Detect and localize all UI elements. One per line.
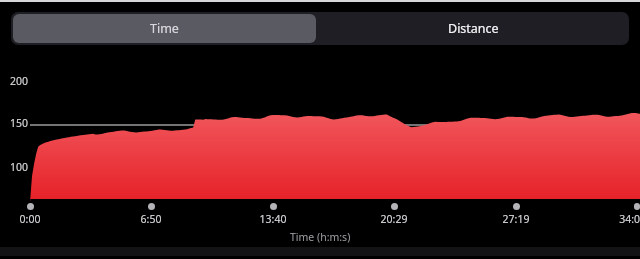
staticText: Time — [150, 20, 179, 37]
staticText: 34:0 — [611, 212, 640, 226]
button[interactable]: Distance — [318, 12, 629, 45]
button[interactable]: Time — [13, 14, 316, 43]
staticText: 200 — [10, 74, 29, 88]
staticText: 20:29 — [368, 212, 420, 226]
staticText: 150 — [10, 116, 29, 130]
staticText: 6:50 — [125, 212, 177, 226]
staticText: Distance — [448, 20, 499, 37]
staticText: 100 — [10, 160, 29, 174]
staticText: 0:00 — [4, 212, 56, 226]
staticText: 27:19 — [490, 212, 542, 226]
staticText: 13:40 — [247, 212, 299, 226]
staticText: Time (h:m:s) — [290, 230, 351, 244]
